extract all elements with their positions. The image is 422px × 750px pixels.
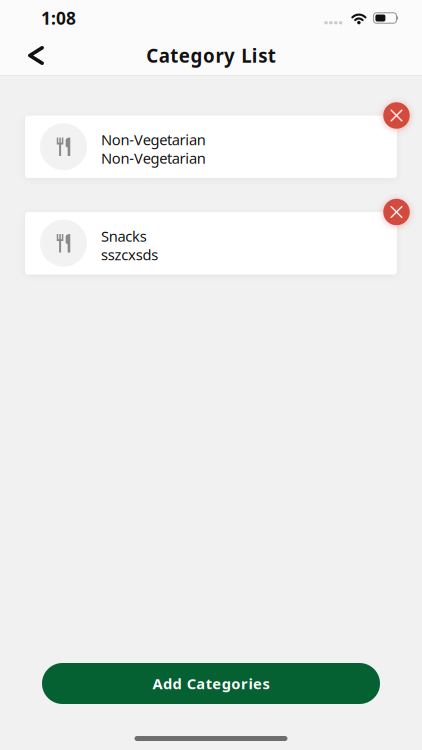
staticText: Category List	[146, 43, 276, 68]
button[interactable]: Delete	[383, 102, 410, 129]
button[interactable]: Snacks	[25, 212, 397, 274]
staticText: 1:08	[41, 6, 76, 29]
staticText: Snacks	[101, 226, 147, 246]
staticText: sszcxsds	[101, 245, 158, 264]
button[interactable]: Add Categories	[42, 663, 380, 704]
button[interactable]: Back	[0, 37, 58, 74]
button[interactable]: Non-Vegetarian	[25, 115, 397, 178]
staticText: Non-Vegetarian	[101, 130, 206, 149]
staticText: Add Categories	[152, 674, 269, 693]
staticText: Non-Vegetarian	[101, 148, 206, 168]
button[interactable]: Delete	[383, 198, 410, 225]
